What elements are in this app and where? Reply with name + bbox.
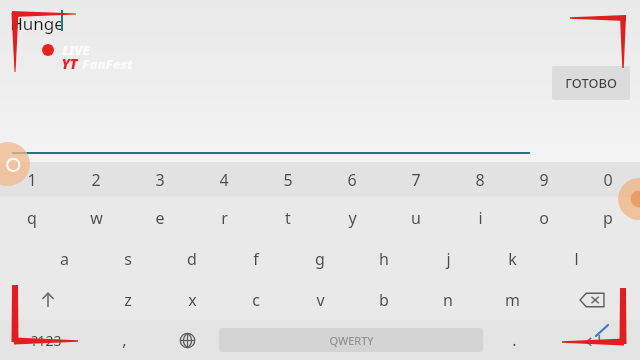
staticText: h xyxy=(379,248,389,270)
button[interactable]: h xyxy=(352,238,416,279)
staticText: a xyxy=(60,248,69,270)
staticText: t xyxy=(285,207,291,229)
staticText: j xyxy=(446,248,451,270)
button[interactable]: s xyxy=(96,238,160,279)
staticText: b xyxy=(379,289,389,311)
button[interactable]: 7 xyxy=(384,162,448,197)
staticText: 6 xyxy=(347,169,357,191)
staticText: 2 xyxy=(91,169,101,191)
staticText: 9 xyxy=(539,169,549,191)
button[interactable]: q xyxy=(0,197,64,238)
button[interactable]: QWERTY xyxy=(219,320,483,360)
button[interactable]: 8 xyxy=(448,162,512,197)
button[interactable]: v xyxy=(288,279,352,320)
button[interactable]: y xyxy=(320,197,384,238)
button[interactable]: b xyxy=(352,279,416,320)
button[interactable]: m xyxy=(480,279,544,320)
button[interactable]: Change language xyxy=(156,320,219,360)
button[interactable]: j xyxy=(416,238,480,279)
staticText: 3 xyxy=(155,169,165,191)
staticText: 7 xyxy=(411,169,421,191)
button[interactable]: x xyxy=(160,279,224,320)
button[interactable]: 9 xyxy=(512,162,576,197)
button[interactable]: c xyxy=(224,279,288,320)
staticText: e xyxy=(155,207,165,229)
staticText: o xyxy=(539,207,549,229)
staticText: Hunge xyxy=(10,12,64,35)
button[interactable]: i xyxy=(448,197,512,238)
button[interactable]: o xyxy=(512,197,576,238)
staticText: v xyxy=(316,289,325,311)
staticText: QWERTY xyxy=(329,333,374,348)
button[interactable]: k xyxy=(480,238,544,279)
staticText: y xyxy=(348,207,357,229)
staticText: 0 xyxy=(603,169,613,191)
button[interactable]: ?123 xyxy=(0,320,93,360)
staticText: x xyxy=(188,289,197,311)
staticText: w xyxy=(90,207,103,229)
button[interactable]: . xyxy=(483,320,546,360)
button[interactable]: 2 xyxy=(64,162,128,197)
button[interactable]: 1 xyxy=(0,162,64,197)
staticText: l xyxy=(574,248,579,270)
staticText: 8 xyxy=(475,169,485,191)
staticText: 4 xyxy=(219,169,229,191)
staticText: LIVE xyxy=(62,41,90,59)
button[interactable]: ГОТОВО xyxy=(552,66,630,100)
staticText: ГОТОВО xyxy=(565,74,617,92)
staticText: g xyxy=(315,248,325,270)
staticText: u xyxy=(411,207,421,229)
staticText: s xyxy=(124,248,132,270)
button[interactable]: r xyxy=(192,197,256,238)
staticText: FanFest xyxy=(82,55,133,73)
staticText: , xyxy=(122,329,127,351)
button[interactable]: f xyxy=(224,238,288,279)
staticText: i xyxy=(478,207,483,229)
button[interactable]: w xyxy=(64,197,128,238)
button[interactable]: u xyxy=(384,197,448,238)
button[interactable]: a xyxy=(32,238,96,279)
button[interactable]: Backspace xyxy=(544,279,640,320)
button[interactable]: 3 xyxy=(128,162,192,197)
button[interactable]: Shift xyxy=(0,279,96,320)
staticText: c xyxy=(252,289,260,311)
button[interactable]: 0 xyxy=(576,162,640,197)
button[interactable]: t xyxy=(256,197,320,238)
button[interactable]: e xyxy=(128,197,192,238)
staticText: . xyxy=(512,329,517,351)
staticText: f xyxy=(253,248,259,270)
button[interactable]: 4 xyxy=(192,162,256,197)
button[interactable]: p xyxy=(576,197,640,238)
button[interactable]: 5 xyxy=(256,162,320,197)
staticText: m xyxy=(505,289,520,311)
button[interactable]: l xyxy=(544,238,608,279)
staticText: 5 xyxy=(283,169,293,191)
staticText: 1 xyxy=(27,169,37,191)
button[interactable]: d xyxy=(160,238,224,279)
button[interactable]: g xyxy=(288,238,352,279)
staticText: YT xyxy=(61,54,78,73)
staticText: q xyxy=(27,207,37,229)
staticText: p xyxy=(603,207,613,229)
button[interactable]: , xyxy=(93,320,156,360)
staticText: z xyxy=(124,289,132,311)
staticText: k xyxy=(508,248,517,270)
button[interactable]: z xyxy=(96,279,160,320)
staticText: n xyxy=(443,289,453,311)
staticText: ?123 xyxy=(31,331,62,350)
button[interactable]: n xyxy=(416,279,480,320)
staticText: d xyxy=(187,248,197,270)
button[interactable]: 6 xyxy=(320,162,384,197)
button[interactable]: Enter xyxy=(546,320,640,360)
staticText: r xyxy=(221,207,228,229)
